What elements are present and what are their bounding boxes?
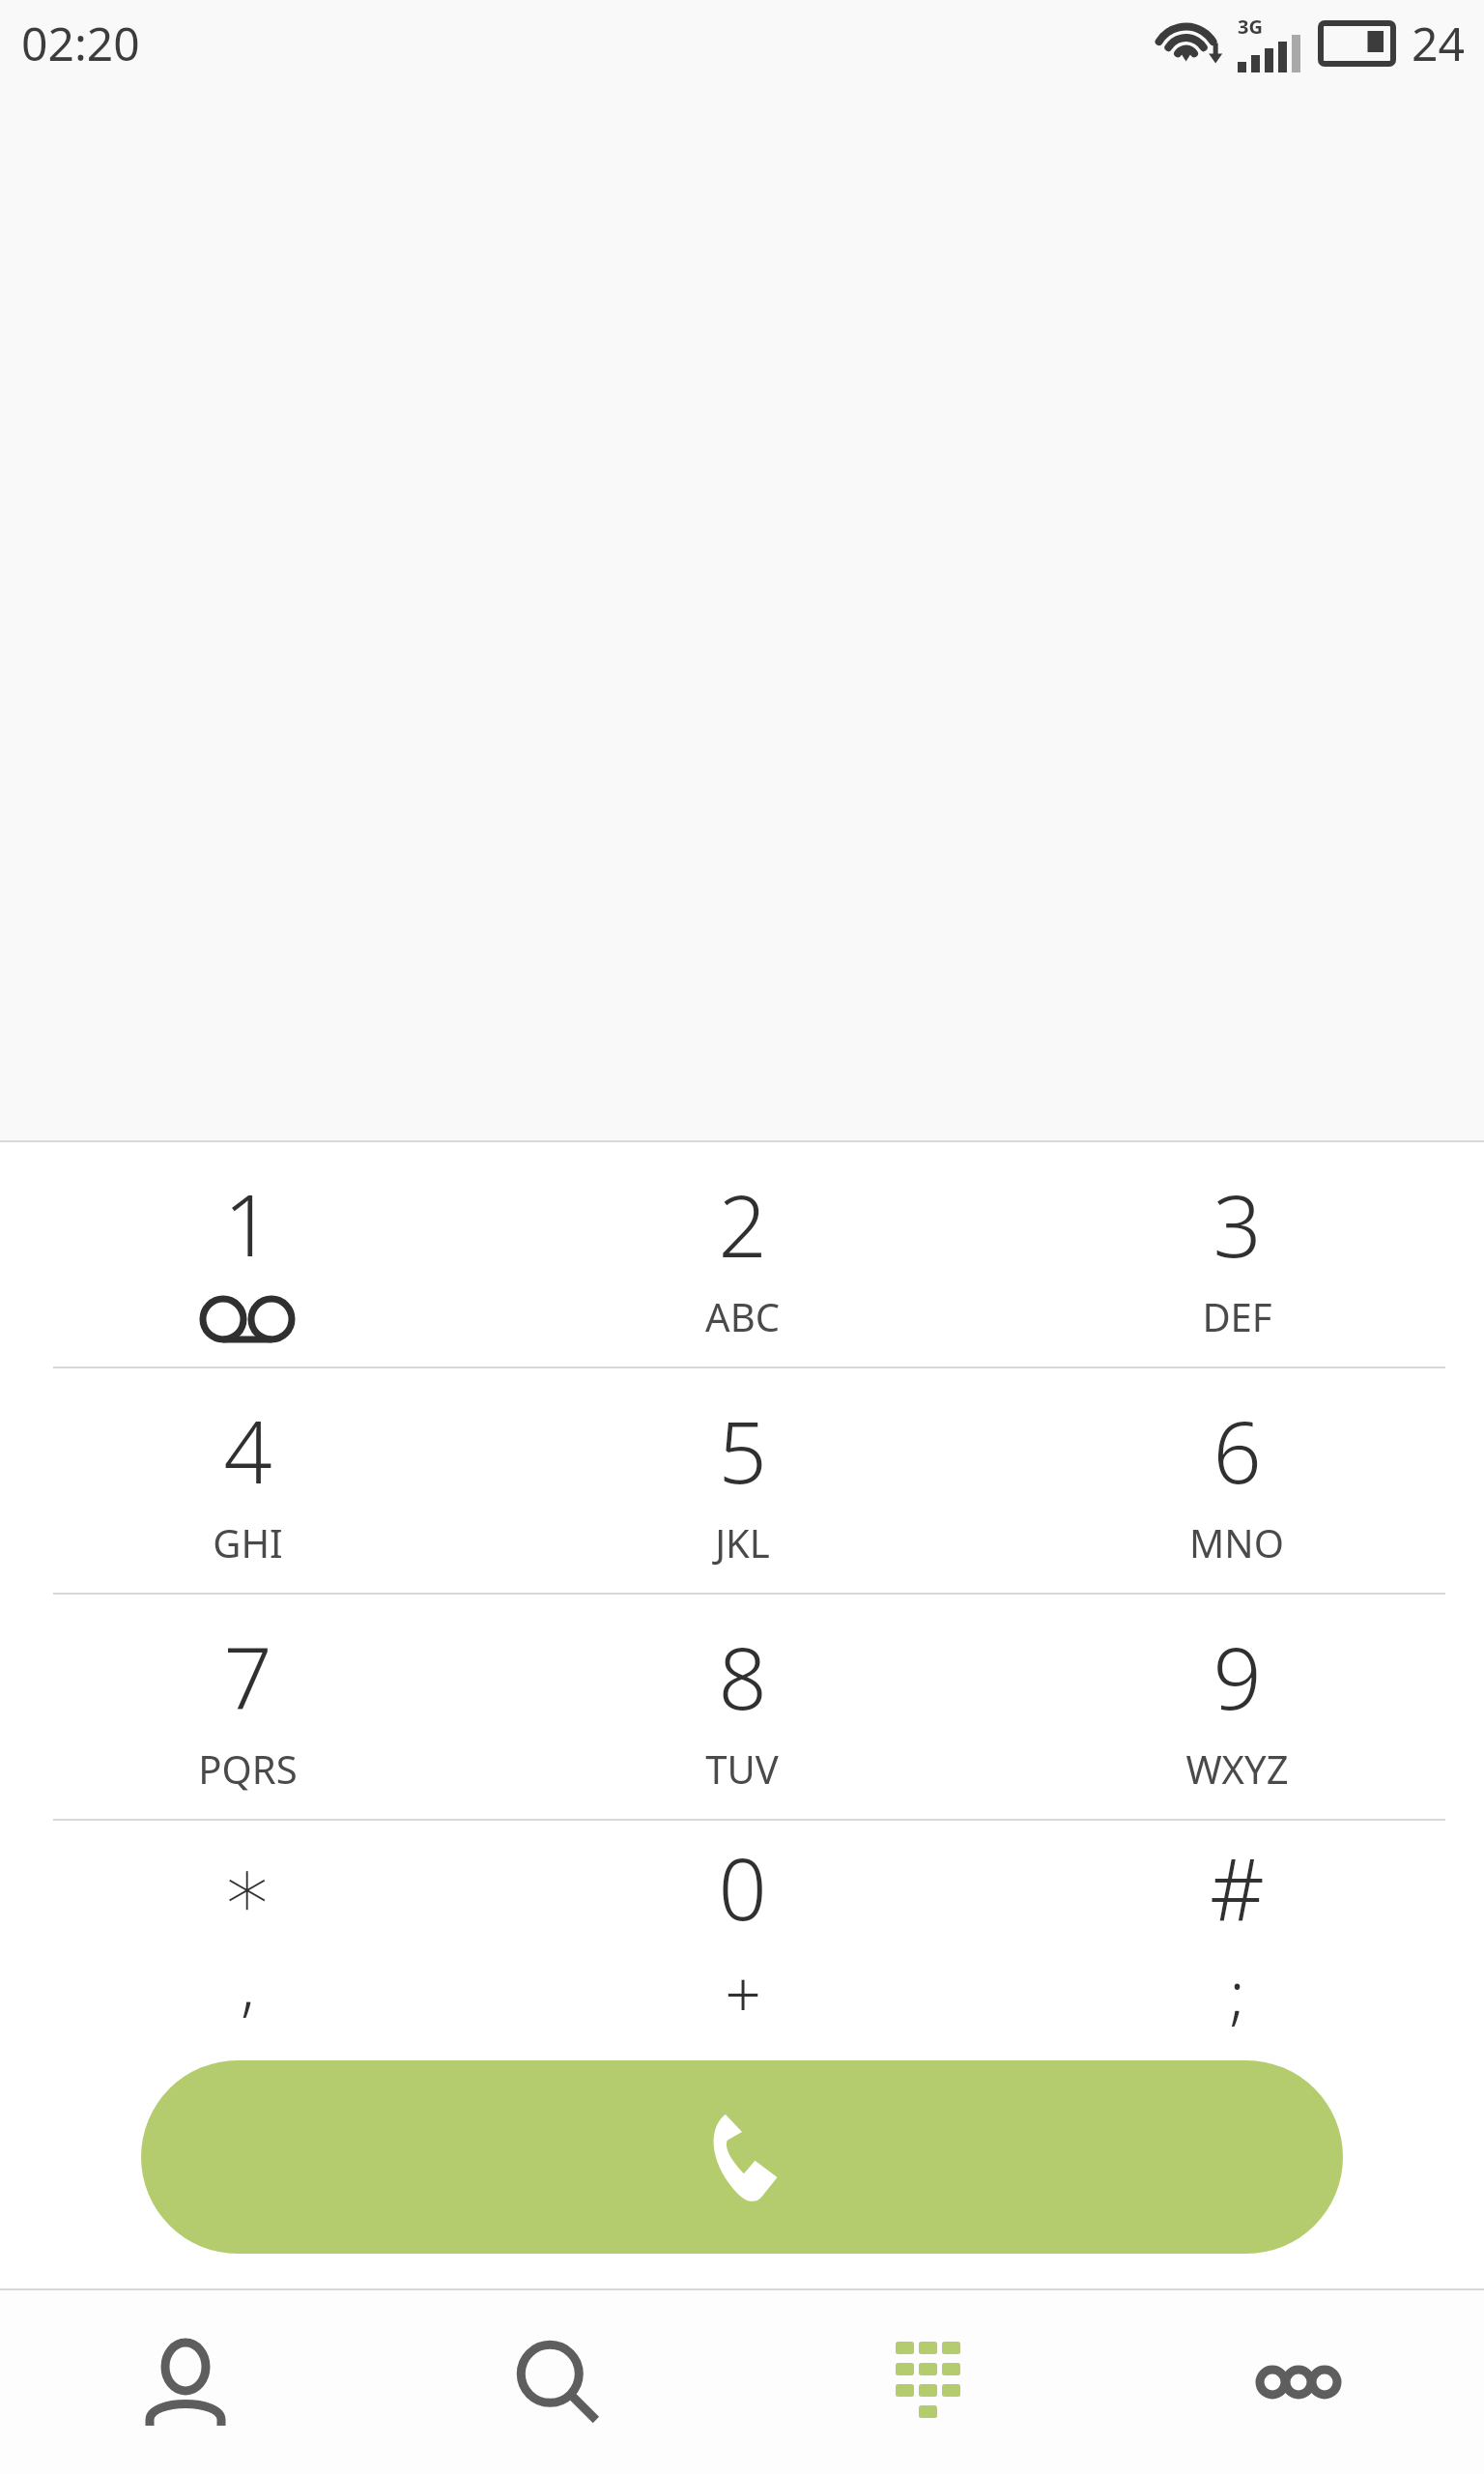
- button[interactable]: 6: [989, 1368, 1484, 1593]
- button[interactable]: 2: [495, 1142, 989, 1366]
- staticText: 9: [1213, 1619, 1262, 1735]
- staticText: WXYZ: [1185, 1742, 1289, 1795]
- staticText: 3: [1213, 1166, 1262, 1282]
- button[interactable]: 4: [0, 1368, 495, 1593]
- button[interactable]: #: [989, 1821, 1484, 2045]
- button[interactable]: 7: [0, 1595, 495, 1819]
- staticText: 2: [718, 1166, 767, 1282]
- staticText: 4: [223, 1393, 272, 1509]
- staticText: 24: [1412, 12, 1465, 74]
- staticText: 1: [223, 1165, 272, 1281]
- staticText: 7: [223, 1619, 272, 1735]
- staticText: 02:20: [21, 12, 140, 74]
- button[interactable]: 1: [0, 1142, 495, 1366]
- staticText: 6: [1213, 1393, 1262, 1509]
- staticText: TUV: [705, 1742, 779, 1795]
- button[interactable]: 9: [989, 1595, 1484, 1819]
- staticText: 3G: [1238, 14, 1263, 40]
- staticText: 0: [718, 1829, 767, 1945]
- staticText: #: [1210, 1829, 1265, 1945]
- button[interactable]: Contacts: [0, 2290, 371, 2474]
- staticText: PQRS: [198, 1742, 298, 1795]
- button[interactable]: More options: [1113, 2290, 1484, 2474]
- staticText: +: [725, 1949, 761, 2036]
- staticText: GHI: [213, 1516, 283, 1568]
- staticText: ,: [241, 1941, 255, 2028]
- button[interactable]: Call: [141, 2060, 1343, 2254]
- staticText: ;: [1229, 1949, 1245, 2036]
- button[interactable]: 3: [989, 1142, 1484, 1366]
- staticText: ABC: [705, 1290, 780, 1342]
- staticText: JKL: [715, 1516, 770, 1568]
- staticText: DEF: [1202, 1290, 1272, 1342]
- staticText: 8: [718, 1619, 767, 1735]
- button[interactable]: ∗: [0, 1821, 495, 2045]
- button[interactable]: 8: [495, 1595, 989, 1819]
- staticText: MNO: [1189, 1516, 1284, 1568]
- staticText: ∗: [220, 1838, 274, 1937]
- button[interactable]: 5: [495, 1368, 989, 1593]
- button[interactable]: Dialpad: [742, 2290, 1113, 2474]
- button[interactable]: 0: [495, 1821, 989, 2045]
- button[interactable]: Search: [371, 2290, 742, 2474]
- staticText: 5: [718, 1393, 767, 1509]
